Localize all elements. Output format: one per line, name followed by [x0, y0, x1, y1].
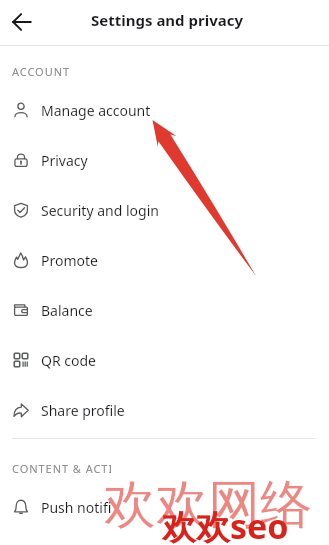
staticText: Privacy — [41, 151, 88, 170]
button[interactable]: Manage account — [0, 85, 329, 135]
button[interactable]: Security and login — [0, 185, 329, 235]
button[interactable]: Privacy — [0, 135, 329, 185]
button[interactable]: Back — [4, 5, 40, 41]
staticText: ACCOUNT — [12, 64, 71, 79]
button[interactable]: Push notifications — [0, 482, 329, 532]
staticText: Balance — [41, 301, 93, 320]
staticText: QR code — [41, 351, 96, 370]
staticText: 欢欢seo — [162, 503, 289, 545]
button[interactable]: Share profile — [0, 385, 329, 435]
button[interactable]: Promote — [0, 235, 329, 285]
staticText: CONTENT & ACTIVITY — [12, 461, 140, 476]
staticText: Manage account — [41, 101, 151, 120]
button[interactable]: Balance — [0, 285, 329, 335]
button[interactable]: QR code — [0, 335, 329, 385]
staticText: 欢欢网络 — [104, 472, 312, 538]
staticText: Push notifications — [41, 498, 159, 517]
staticText: Promote — [41, 251, 98, 270]
staticText: Share profile — [41, 401, 125, 420]
staticText: Settings and privacy — [91, 10, 244, 30]
staticText: Security and login — [41, 201, 159, 220]
